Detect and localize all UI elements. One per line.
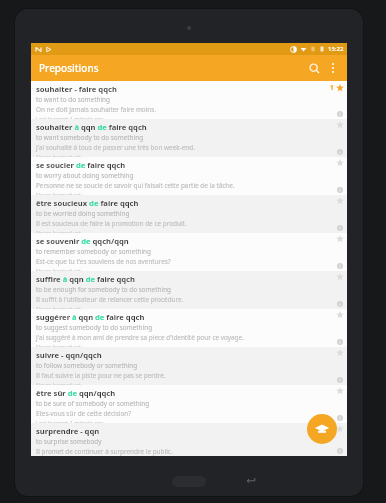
button[interactable]: Favorite [336, 235, 344, 243]
staticText: être soucieux de faire qqch [36, 198, 139, 208]
button[interactable]: souhaiter - faire qqch [31, 81, 347, 119]
button[interactable]: se soucier de faire qqch [31, 157, 347, 195]
button[interactable]: Info [337, 263, 343, 269]
staticText: Never learned yet [36, 191, 81, 195]
staticText: 1 [330, 83, 334, 92]
button[interactable]: Info [337, 301, 343, 307]
staticText: Never learned yet [36, 305, 81, 309]
staticText: suggérer à qqn de faire qqch [36, 312, 145, 322]
staticText: être sûr de qqn/qqch [36, 388, 116, 398]
button[interactable]: More options [324, 59, 342, 77]
button[interactable]: Favorite [336, 159, 344, 167]
staticText: Il faut suivre la piste pour ne pas se p… [36, 371, 166, 380]
staticText: to be sure of somebody or something [36, 399, 150, 408]
button[interactable]: Favorite [336, 121, 344, 129]
staticText: Never learned yet [36, 153, 81, 157]
button[interactable]: Favorite [336, 197, 344, 205]
button[interactable]: suggérer à qqn de faire qqch [31, 309, 347, 347]
staticText: to be enough for somebody to do somethin… [36, 285, 172, 294]
button[interactable]: Start learning [307, 414, 337, 444]
button[interactable]: Info [337, 225, 343, 231]
button[interactable]: Info [337, 377, 343, 383]
button[interactable]: Favorite [336, 273, 344, 281]
staticText: Etes-vous sûr de cette décision? [36, 409, 131, 418]
button[interactable]: Info [337, 448, 343, 454]
staticText: to follow somebody or something [36, 361, 138, 370]
staticText: Never learned yet [36, 381, 81, 385]
button[interactable]: Favorite [330, 83, 344, 92]
button[interactable]: être sûr de qqn/qqch [31, 385, 347, 423]
button[interactable]: suffire à qqn de faire qqch [31, 271, 347, 309]
staticText: to be worried doing something [36, 209, 130, 218]
staticText: to worry about doing something [36, 171, 134, 180]
staticText: Never learned yet [36, 229, 81, 233]
staticText: to want to do something [36, 95, 110, 104]
button[interactable]: Favorite [336, 311, 344, 319]
button[interactable]: Info [337, 149, 343, 155]
button[interactable]: Favorite [336, 387, 344, 395]
staticText: J'ai suggéré à mon ami de prendre sa pie… [36, 333, 244, 342]
staticText: to surprise somebody [36, 437, 102, 446]
staticText: se soucier de faire qqch [36, 160, 126, 170]
staticText: souhaiter à qqn de faire qqch [36, 122, 147, 132]
button[interactable]: souhaiter à qqn de faire qqch [31, 119, 347, 157]
button[interactable]: Info [337, 111, 343, 117]
staticText: se souvenir de qqch/qqn [36, 236, 129, 246]
staticText: suffire à qqn de faire qqch [36, 274, 135, 284]
staticText: Il suffit à l'utilisateur de relancer ce… [36, 295, 184, 304]
staticText: Never learned yet [36, 343, 81, 347]
staticText: to want somebody to do something [36, 133, 144, 142]
staticText: Last learned: 1 minute ago [36, 115, 104, 119]
staticText: Il promet de continuer à surprendre le p… [36, 447, 173, 456]
staticText: Il est soucieux de faire la promotion de… [36, 219, 187, 228]
staticText: Last learned: 1 minute ago [36, 419, 104, 423]
staticText: Prepositions [39, 61, 99, 75]
button[interactable]: Info [337, 187, 343, 193]
staticText: suivre - qqn/qqch [36, 350, 102, 360]
staticText: On ne doit jamais souhaiter faire moins. [36, 105, 157, 114]
staticText: surprendre - qqn [36, 426, 100, 436]
button[interactable]: être soucieux de faire qqch [31, 195, 347, 233]
button[interactable]: surprendre - qqn [31, 423, 347, 456]
button[interactable]: suivre - qqn/qqch [31, 347, 347, 385]
button[interactable]: Favorite [336, 425, 344, 433]
button[interactable]: Search [304, 58, 324, 78]
button[interactable]: Favorite [336, 349, 344, 357]
staticText: Never learned yet [36, 267, 81, 271]
staticText: souhaiter - faire qqch [36, 84, 117, 94]
staticText: Personne ne se soucie de savoir qui fais… [36, 181, 235, 190]
staticText: 15:22 [328, 45, 344, 53]
button[interactable]: Info [337, 339, 343, 345]
staticText: to remember somebody or something [36, 247, 151, 256]
button[interactable]: Info [337, 415, 343, 421]
button[interactable]: se souvenir de qqch/qqn [31, 233, 347, 271]
staticText: Est-ce que tu t'es souviens de nos avent… [36, 257, 171, 266]
staticText: to suggest somebody to do something [36, 323, 153, 332]
staticText: J'ai souhaité à tous de passer une très … [36, 143, 195, 152]
button[interactable]: Back [246, 475, 256, 485]
